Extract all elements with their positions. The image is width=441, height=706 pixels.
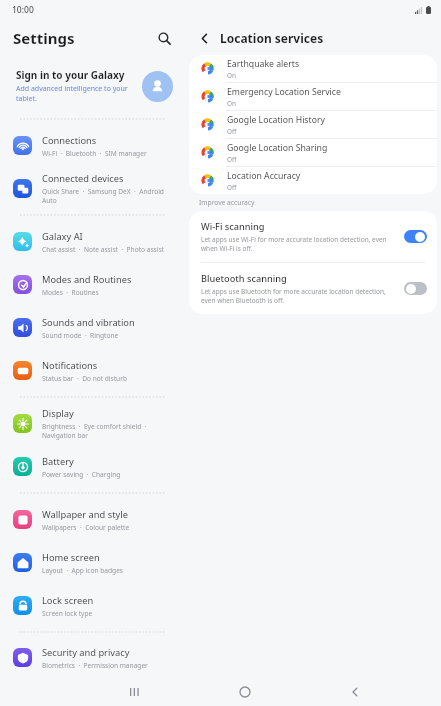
button[interactable]: Google Location History [189, 111, 437, 138]
staticText: Settings [13, 28, 75, 48]
button[interactable]: Recents [118, 678, 152, 706]
button[interactable]: Home screen [5, 541, 180, 584]
button[interactable] [404, 230, 427, 243]
button[interactable]: Emergency Location Service [189, 83, 437, 110]
staticText: On [227, 99, 236, 108]
button[interactable]: Earthquake alerts [189, 55, 437, 82]
button[interactable]: Galaxy AI [5, 220, 180, 263]
staticText: Off [227, 127, 237, 136]
staticText: Improve accuracy [199, 198, 255, 207]
staticText: Emergency Location Service [227, 86, 341, 98]
button[interactable]: Wi-Fi scanning [189, 211, 437, 262]
staticText: Wi-Fi scanning [201, 220, 265, 233]
button[interactable]: Notifications [5, 349, 180, 392]
staticText: Galaxy AI [42, 230, 83, 243]
staticText: Off [227, 155, 237, 164]
staticText: Home screen [42, 551, 100, 564]
staticText: Power saving · Charging [42, 470, 121, 479]
button[interactable]: Bluetooth scanning [189, 263, 437, 314]
staticText: Brightness · Eye comfort shield · Naviga… [42, 422, 172, 440]
staticText: Let apps use Bluetooth for more accurate… [201, 287, 396, 305]
button[interactable]: Wallpaper and style [5, 498, 180, 541]
staticText: Screen lock type [42, 609, 93, 618]
staticText: Notifications [42, 359, 98, 372]
staticText: Wi-Fi · Bluetooth · SIM manager [42, 149, 147, 158]
staticText: Connections [42, 134, 97, 147]
button[interactable]: Battery [5, 445, 180, 488]
staticText: Sounds and vibration [42, 316, 135, 329]
staticText: Bluetooth scanning [201, 272, 287, 285]
staticText: Earthquake alerts [227, 58, 300, 70]
button[interactable]: Back [338, 678, 372, 706]
staticText: Quick Share · Samsung DeX · Android Auto [42, 187, 172, 205]
staticText: Connected devices [42, 172, 124, 185]
button[interactable]: Back [192, 26, 216, 50]
staticText: Sign in to your Galaxy [16, 68, 125, 82]
button[interactable]: Sign in to your Galaxy [0, 55, 185, 117]
staticText: Location services [220, 30, 324, 46]
staticText: Location Accuracy [227, 170, 301, 182]
button[interactable]: Connected devices [5, 167, 180, 210]
button[interactable] [404, 282, 427, 295]
staticText: Security and privacy [42, 646, 130, 659]
staticText: Google Location Sharing [227, 142, 328, 154]
button[interactable]: Home [228, 678, 262, 706]
button[interactable]: Connections [5, 124, 180, 167]
staticText: Lock screen [42, 594, 94, 607]
button[interactable]: Search [151, 25, 177, 51]
button[interactable]: Display [5, 402, 180, 445]
staticText: Wallpaper and style [42, 508, 128, 521]
button[interactable]: Security and privacy [5, 637, 180, 678]
staticText: Biometrics · Permission manager [42, 661, 148, 670]
staticText: Battery [42, 455, 74, 468]
staticText: Display [42, 407, 74, 420]
staticText: On [227, 71, 236, 80]
staticText: Modes and Routines [42, 273, 132, 286]
staticText: Chat assist · Note assist · Photo assist [42, 245, 165, 254]
button[interactable]: Sounds and vibration [5, 306, 180, 349]
staticText: Sound mode · Ringtone [42, 331, 119, 340]
staticText: Off [227, 183, 237, 192]
staticText: Status bar · Do not disturb [42, 374, 127, 383]
button[interactable]: Location Accuracy [189, 167, 437, 194]
staticText: Layout · App icon badges [42, 566, 124, 575]
staticText: 10:00 [12, 4, 34, 16]
staticText: Add advanced intelligence to your tablet… [16, 84, 136, 104]
button[interactable]: Modes and Routines [5, 263, 180, 306]
staticText: Modes · Routines [42, 288, 99, 297]
staticText: Wallpapers · Colour palette [42, 523, 130, 532]
staticText: Google Location History [227, 114, 325, 126]
staticText: Let apps use Wi-Fi for more accurate loc… [201, 235, 396, 253]
button[interactable]: Google Location Sharing [189, 139, 437, 166]
button[interactable]: Lock screen [5, 584, 180, 627]
